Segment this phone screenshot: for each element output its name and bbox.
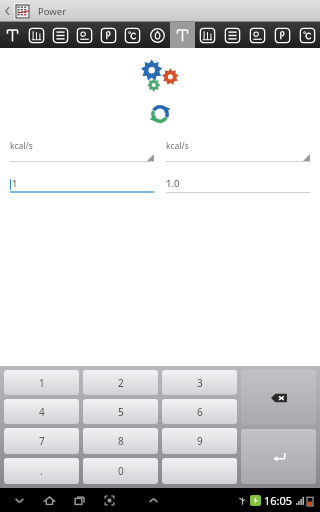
button[interactable]: 1.0: [166, 173, 310, 193]
staticText: 1.0: [166, 177, 180, 190]
staticText: 2: [118, 376, 124, 390]
staticText: 16:05: [264, 493, 293, 508]
button[interactable]: Expand: [138, 488, 168, 512]
button[interactable]: 5: [83, 399, 158, 424]
button[interactable]: Enter: [241, 429, 316, 484]
button[interactable]: kcal/s: [166, 140, 310, 162]
button[interactable]: 4: [4, 399, 79, 424]
staticText: Power: [38, 5, 67, 18]
staticText: 1: [39, 376, 45, 390]
button[interactable]: Backspace: [241, 370, 316, 425]
button[interactable]: Unit category 2: [24, 22, 48, 48]
button[interactable]: 3: [162, 370, 237, 395]
button[interactable]: 6: [162, 399, 237, 424]
staticText: 8: [118, 434, 124, 448]
staticText: 6: [197, 405, 203, 419]
button[interactable]: Unit category 3: [48, 22, 72, 48]
button[interactable]: 2: [83, 370, 158, 395]
staticText: 4: [39, 405, 45, 419]
button[interactable]: kcal/s: [10, 140, 154, 162]
button[interactable]: Unit category 7: [145, 22, 170, 48]
button[interactable]: Unit category 6: [120, 22, 145, 48]
button[interactable]: 1: [4, 370, 79, 395]
button[interactable]: Screenshot: [94, 488, 124, 512]
staticText: 9: [197, 434, 203, 448]
button[interactable]: 1: [10, 173, 154, 193]
button[interactable]: .: [4, 458, 79, 484]
button[interactable]: Unit category 13: [295, 22, 320, 48]
staticText: 1: [12, 177, 18, 190]
button[interactable]: Unit category 8: [170, 22, 195, 48]
staticText: 7: [39, 434, 45, 448]
button[interactable]: 9: [162, 428, 237, 454]
button[interactable]: Recents: [64, 488, 94, 512]
button[interactable]: Unit category 5: [96, 22, 120, 48]
staticText: kcal/s: [10, 140, 33, 152]
button[interactable]: [162, 458, 237, 484]
staticText: kcal/s: [166, 140, 189, 152]
button[interactable]: Hide keyboard: [4, 488, 34, 512]
button[interactable]: Unit category 11: [245, 22, 270, 48]
button[interactable]: 7: [4, 428, 79, 454]
button[interactable]: Unit category 9: [195, 22, 220, 48]
button[interactable]: Unit category 12: [270, 22, 295, 48]
staticText: 3: [197, 376, 203, 390]
staticText: 0: [118, 464, 124, 478]
staticText: .: [40, 464, 43, 478]
button[interactable]: 8: [83, 428, 158, 454]
button[interactable]: Unit category 10: [220, 22, 245, 48]
button[interactable]: Unit category 1: [0, 22, 24, 48]
staticText: 5: [118, 405, 124, 419]
button[interactable]: Swap units: [148, 102, 172, 126]
button[interactable]: 0: [83, 458, 158, 484]
button[interactable]: Unit category 4: [72, 22, 96, 48]
button[interactable]: Home: [34, 488, 64, 512]
